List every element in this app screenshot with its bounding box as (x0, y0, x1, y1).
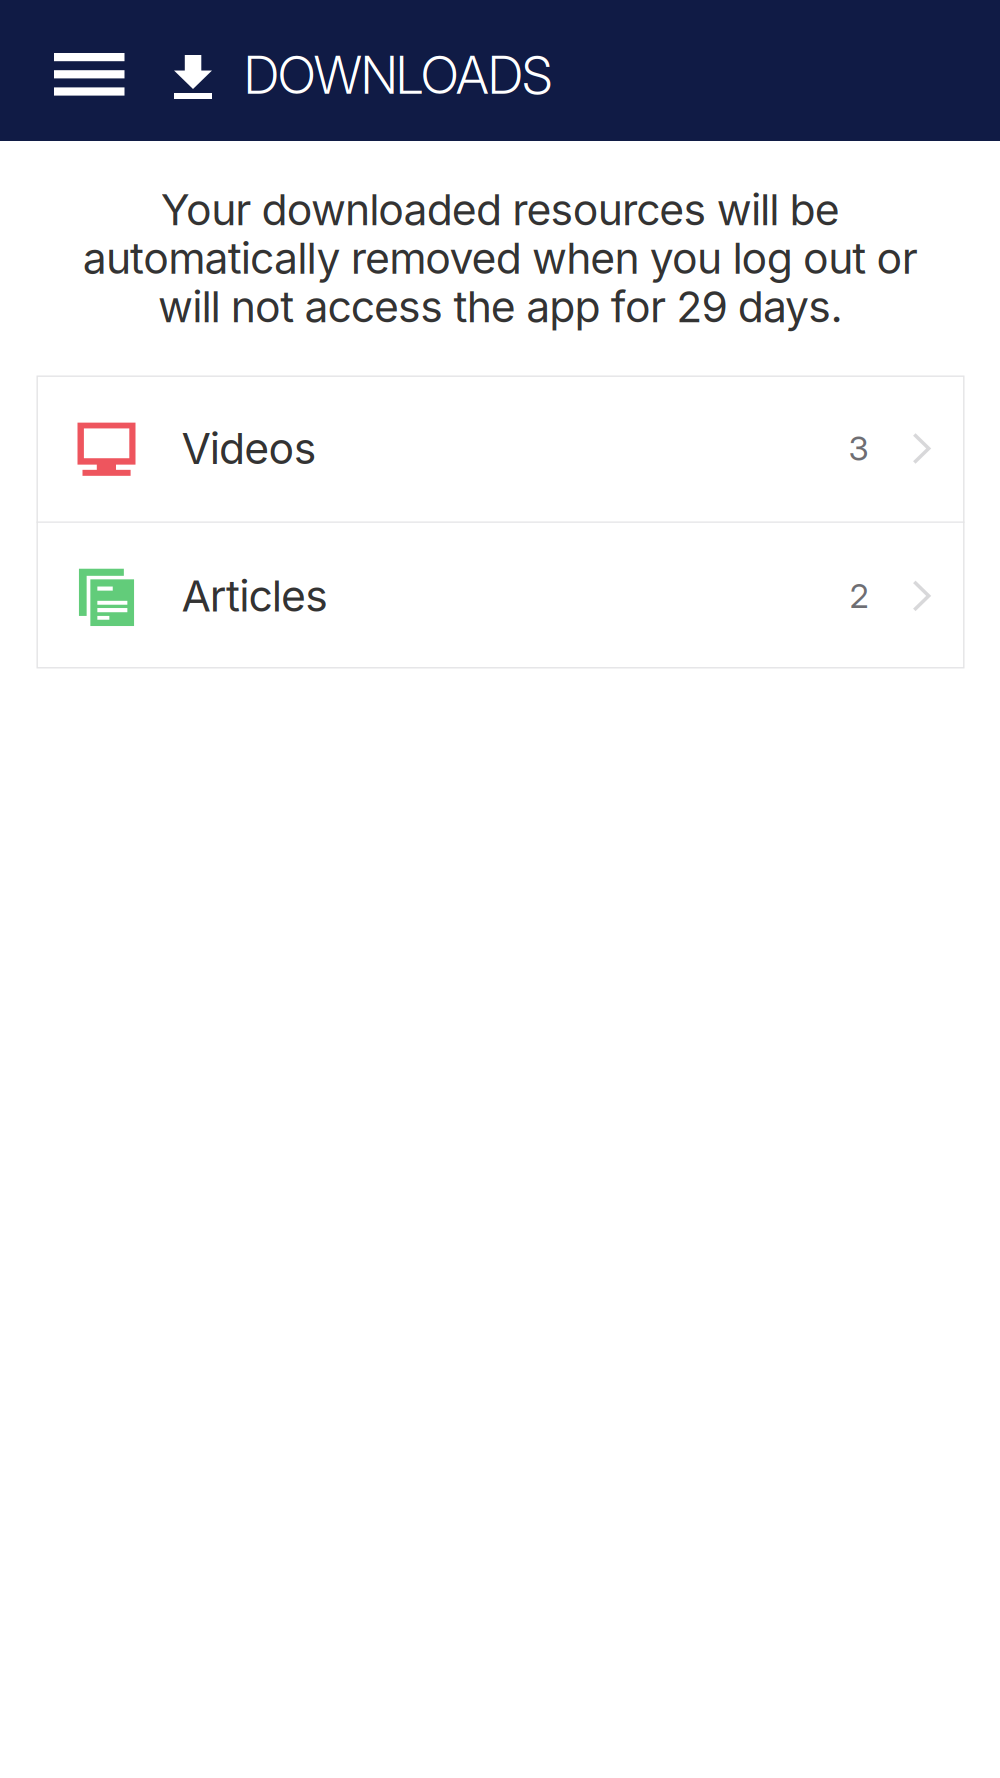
staticText: 3 (848, 428, 868, 469)
button[interactable]: Videos (36, 375, 964, 521)
staticText: Videos (181, 423, 317, 474)
button[interactable]: Articles (36, 523, 964, 669)
staticText: DOWNLOADS (244, 44, 552, 106)
staticText: Your downloaded resources will be automa… (82, 184, 917, 332)
staticText: Articles (181, 570, 328, 622)
staticText: 2 (849, 576, 868, 616)
button[interactable]: Menu (0, 0, 148, 120)
